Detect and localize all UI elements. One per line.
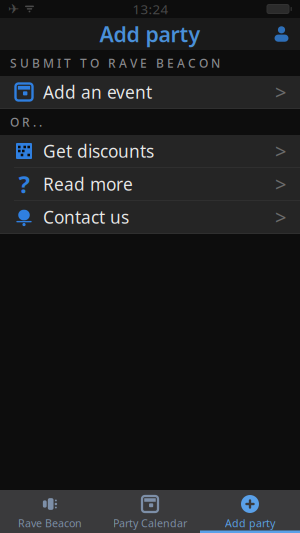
staticText: Add party: [225, 516, 275, 530]
staticText: Get discounts: [43, 139, 154, 162]
staticText: Add an event: [43, 80, 152, 103]
button[interactable]: Add party: [200, 490, 300, 533]
staticText: >: [275, 171, 286, 197]
button[interactable]: Get discounts: [0, 135, 300, 168]
staticText: Party Calendar: [113, 516, 187, 530]
staticText: Rave Beacon: [18, 516, 82, 530]
button[interactable]: Contact us: [0, 201, 300, 234]
staticText: 13:24: [132, 0, 168, 18]
button[interactable]: Account: [263, 18, 300, 50]
staticText: Read more: [43, 172, 133, 195]
staticText: >: [275, 138, 286, 164]
staticText: ✈: [8, 1, 19, 16]
staticText: O R . .: [10, 114, 42, 130]
staticText: S U B M I T T O R A V E B E A C O N: [10, 55, 220, 71]
staticText: Add party: [99, 20, 200, 48]
button[interactable]: Rave Beacon: [0, 490, 100, 533]
button[interactable]: Add an event: [0, 76, 300, 109]
staticText: >: [275, 79, 286, 105]
staticText: ?: [18, 168, 29, 200]
button[interactable]: Party Calendar: [100, 490, 200, 533]
staticText: >: [275, 204, 286, 230]
button[interactable]: ?: [0, 168, 300, 201]
staticText: Contact us: [43, 205, 129, 228]
